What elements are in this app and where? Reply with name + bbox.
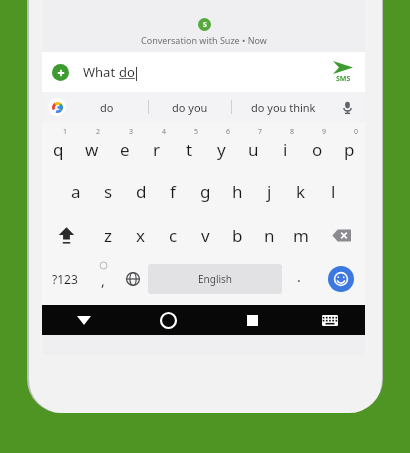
button[interactable]: 6 <box>205 126 237 169</box>
button[interactable]: 4 <box>141 126 173 169</box>
button[interactable]: Hide keyboard <box>42 305 126 335</box>
staticText: 4 <box>162 127 167 137</box>
button[interactable]: Change language <box>118 257 148 301</box>
staticText: k <box>296 180 306 203</box>
staticText: j <box>267 180 272 203</box>
staticText: a <box>71 180 81 203</box>
button[interactable]: . <box>282 257 316 301</box>
button[interactable]: do you think <box>232 92 335 122</box>
staticText: 5 <box>194 127 199 137</box>
staticText: c <box>169 224 178 247</box>
staticText: English <box>198 272 233 286</box>
staticText: p <box>344 138 355 161</box>
button[interactable]: do <box>66 92 148 122</box>
staticText: d <box>136 180 147 203</box>
button[interactable]: d <box>125 169 157 213</box>
staticText: SMS <box>336 74 351 84</box>
staticText: do you think <box>251 100 316 115</box>
staticText: 3 <box>129 127 134 137</box>
button[interactable]: m <box>285 213 317 257</box>
button[interactable]: s <box>92 169 125 213</box>
staticText: n <box>264 224 275 247</box>
button[interactable]: Switch keyboard <box>294 305 365 335</box>
button[interactable]: z <box>91 213 124 257</box>
staticText: o <box>312 138 323 161</box>
staticText: x <box>136 224 145 247</box>
staticText: , <box>101 271 105 290</box>
button[interactable]: h <box>221 169 253 213</box>
staticText: g <box>200 180 211 203</box>
staticText: r <box>153 138 161 161</box>
button[interactable]: n <box>253 213 285 257</box>
button[interactable]: Emoji <box>328 266 354 292</box>
staticText: S <box>203 20 207 30</box>
button[interactable]: v <box>189 213 221 257</box>
staticText: 8 <box>290 127 295 137</box>
button[interactable]: Backspace <box>317 213 365 257</box>
button[interactable]: Recent apps <box>210 305 294 335</box>
staticText: y <box>217 138 226 161</box>
button[interactable]: b <box>221 213 253 257</box>
button[interactable]: 9 <box>301 126 333 169</box>
staticText: do <box>100 100 114 115</box>
staticText: 6 <box>226 127 231 137</box>
button[interactable]: , <box>88 257 118 301</box>
staticText: 1 <box>63 127 68 137</box>
staticText: 7 <box>258 127 263 137</box>
button[interactable]: do you <box>149 92 231 122</box>
staticText: . <box>297 267 301 286</box>
button[interactable]: Google <box>48 98 66 116</box>
button[interactable]: Add attachment <box>52 64 69 81</box>
staticText: v <box>201 224 210 247</box>
staticText: w <box>85 138 99 161</box>
button[interactable]: 3 <box>108 126 141 169</box>
button[interactable]: 5 <box>173 126 205 169</box>
staticText: t <box>186 138 193 161</box>
staticText: 0 <box>354 127 359 137</box>
button[interactable]: English <box>148 264 282 294</box>
staticText: f <box>170 180 176 203</box>
button[interactable]: 8 <box>269 126 301 169</box>
button[interactable]: j <box>253 169 285 213</box>
button[interactable]: l <box>317 169 349 213</box>
button[interactable]: f <box>157 169 189 213</box>
staticText: do <box>119 63 135 81</box>
staticText: What <box>83 63 119 81</box>
button[interactable]: k <box>285 169 317 213</box>
staticText: m <box>293 224 309 247</box>
button[interactable]: a <box>59 169 92 213</box>
staticText: do you <box>172 100 208 115</box>
button[interactable]: Send SMS <box>331 59 355 86</box>
button[interactable]: 2 <box>75 126 108 169</box>
staticText: 2 <box>96 127 101 137</box>
staticText: z <box>104 224 112 247</box>
staticText: i <box>283 138 288 161</box>
staticText: e <box>120 138 130 161</box>
staticText: 9 <box>322 127 327 137</box>
staticText: ?123 <box>52 271 78 287</box>
button[interactable]: g <box>189 169 221 213</box>
staticText: h <box>232 180 243 203</box>
staticText: u <box>248 138 259 161</box>
button[interactable]: c <box>157 213 189 257</box>
button[interactable]: 7 <box>237 126 269 169</box>
button[interactable]: x <box>124 213 157 257</box>
button[interactable]: 1 <box>42 126 75 169</box>
staticText: q <box>53 138 64 161</box>
staticText: l <box>331 180 336 203</box>
button[interactable]: Shift <box>42 213 91 257</box>
button[interactable]: Voice input <box>335 92 359 122</box>
button[interactable]: 0 <box>333 126 365 169</box>
staticText: Conversation with Suze • Now <box>141 34 267 46</box>
button[interactable]: ?123 <box>42 257 88 301</box>
staticText: b <box>232 224 243 247</box>
staticText: s <box>104 180 113 203</box>
button[interactable]: Home <box>126 305 210 335</box>
